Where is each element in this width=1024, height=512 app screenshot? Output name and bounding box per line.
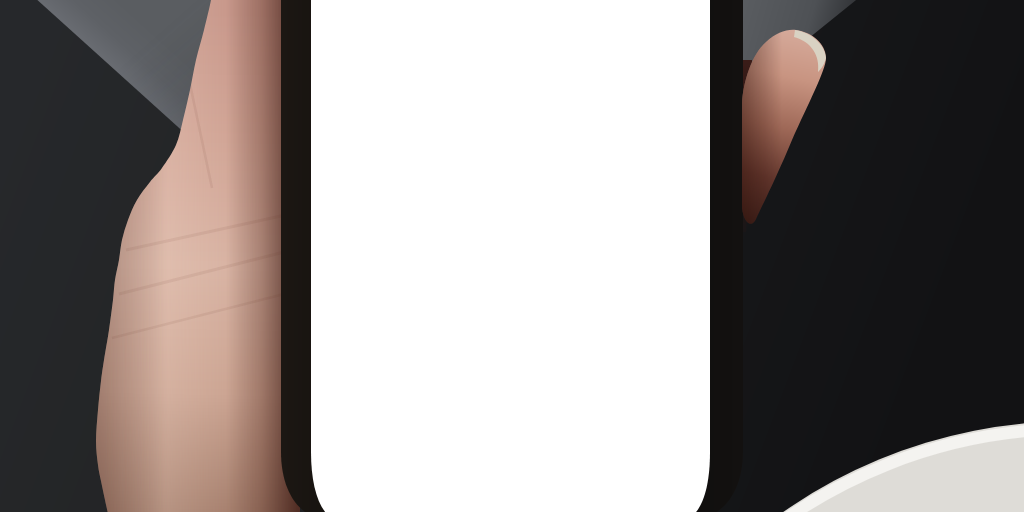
button[interactable]: Blank phone screen mockup (0, 0, 1024, 512)
